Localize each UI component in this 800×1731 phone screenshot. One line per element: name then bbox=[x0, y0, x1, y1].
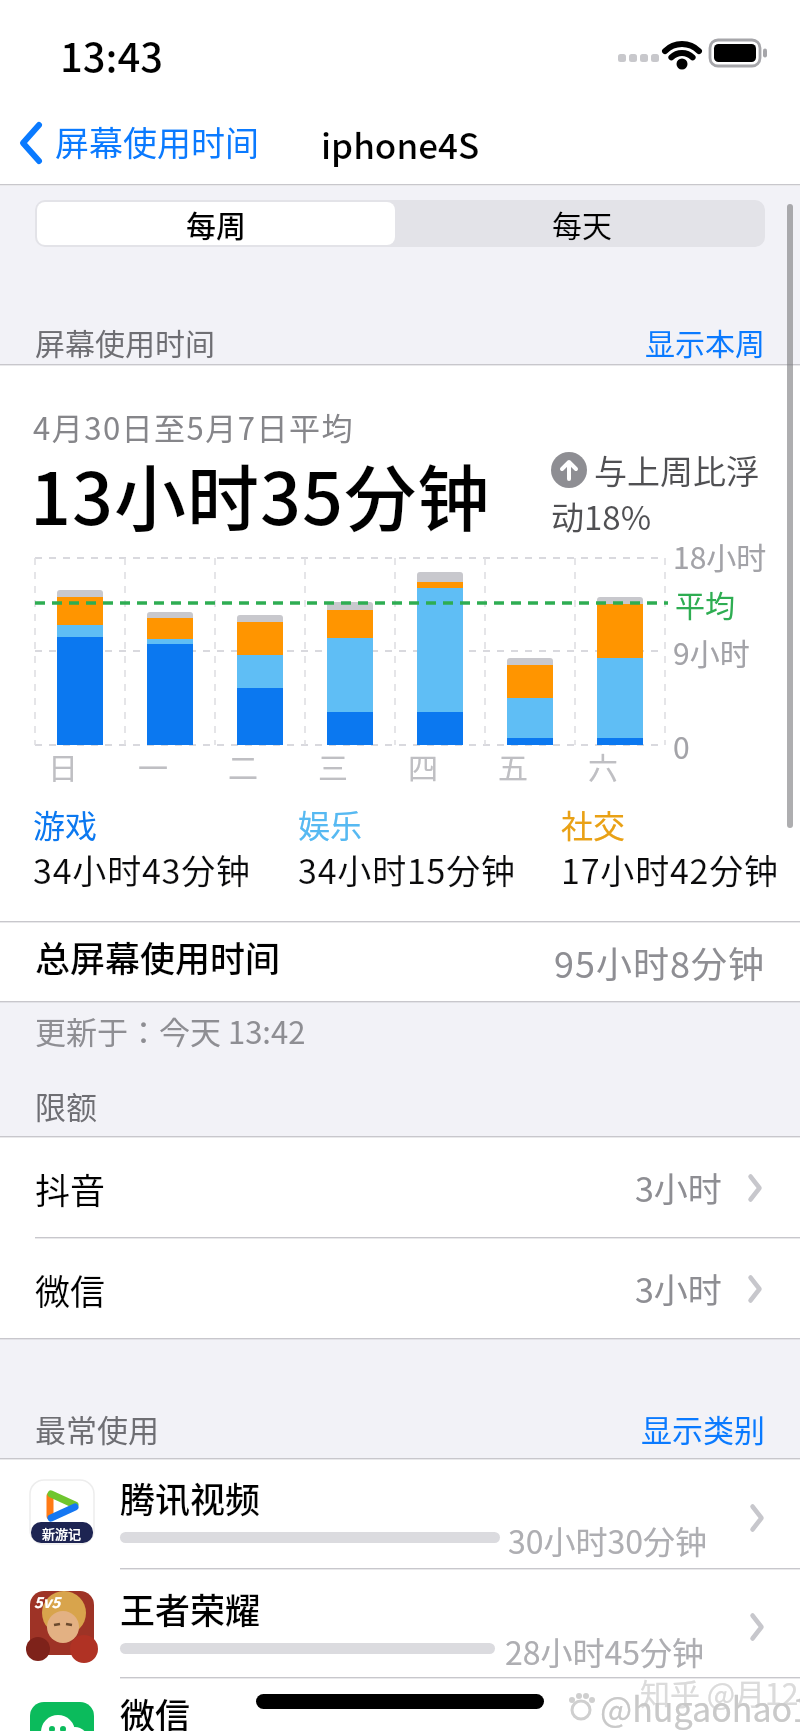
staticText: 三 bbox=[318, 744, 348, 787]
staticText: 日 bbox=[48, 744, 78, 787]
staticText: 30小时30分钟 bbox=[508, 1517, 708, 1563]
staticText: 17小时42分钟 bbox=[561, 845, 779, 894]
staticText: 屏幕使用时间 bbox=[35, 320, 215, 363]
staticText: 13:43 bbox=[60, 26, 164, 84]
button[interactable]: 腾讯视频 bbox=[0, 1459, 800, 1568]
staticText: 限额 bbox=[35, 1083, 97, 1128]
staticText: 一 bbox=[138, 744, 168, 787]
staticText: 六 bbox=[588, 744, 618, 787]
staticText: 微信 bbox=[35, 1264, 106, 1315]
staticText: 5v5 bbox=[34, 1591, 61, 1613]
staticText: 3小时 bbox=[635, 1163, 722, 1212]
staticText: 五 bbox=[498, 744, 528, 787]
staticText: 社交 bbox=[561, 801, 626, 847]
staticText: iphone4S bbox=[321, 118, 480, 169]
staticText: 4月30日至5月7日平均 bbox=[33, 404, 355, 449]
staticText: 二 bbox=[228, 744, 258, 787]
staticText: 每周 bbox=[186, 202, 246, 245]
staticText: 13小时35分钟 bbox=[30, 441, 491, 545]
staticText: 新游记 bbox=[42, 1524, 82, 1543]
staticText: 总屏幕使用时间 bbox=[35, 931, 281, 982]
staticText: 每天 bbox=[552, 202, 612, 245]
staticText: 18小时 bbox=[673, 534, 767, 577]
staticText: 9小时 bbox=[673, 630, 750, 673]
button[interactable]: 显示本周 bbox=[645, 320, 765, 363]
staticText: 抖音 bbox=[35, 1163, 106, 1214]
staticText: 34小时43分钟 bbox=[33, 845, 251, 894]
staticText: 四 bbox=[408, 744, 438, 787]
button[interactable]: 每周 bbox=[37, 202, 395, 245]
staticText: 更新于：今天 13:42 bbox=[35, 1008, 306, 1053]
button[interactable]: 每天 bbox=[400, 202, 763, 245]
staticText: 动18% bbox=[551, 492, 652, 540]
staticText: 28小时45分钟 bbox=[505, 1628, 705, 1674]
button[interactable]: 微信 bbox=[0, 1678, 800, 1731]
staticText: 娱乐 bbox=[298, 801, 363, 847]
staticText: 3小时 bbox=[635, 1264, 722, 1313]
button[interactable]: 显示类别 bbox=[641, 1406, 765, 1451]
staticText: 腾讯视频 bbox=[120, 1472, 261, 1523]
staticText: @hugaohao123 bbox=[600, 1683, 800, 1731]
staticText: 王者荣耀 bbox=[120, 1583, 261, 1634]
button[interactable]: 微信 bbox=[0, 1238, 800, 1338]
staticText: 屏幕使用时间 bbox=[55, 117, 259, 166]
staticText: 与上周比浮 bbox=[594, 446, 759, 494]
button[interactable]: 王者荣耀 bbox=[0, 1569, 800, 1677]
staticText: 0 bbox=[673, 724, 690, 767]
button[interactable]: 总屏幕使用时间 bbox=[0, 922, 800, 1002]
staticText: 游戏 bbox=[33, 801, 98, 847]
staticText: 平均 bbox=[675, 582, 735, 625]
staticText: 34小时15分钟 bbox=[298, 845, 516, 894]
staticText: 微信 bbox=[120, 1688, 191, 1731]
staticText: 最常使用 bbox=[35, 1406, 159, 1451]
button[interactable]: 抖音 bbox=[0, 1137, 800, 1237]
staticText: 95小时8分钟 bbox=[554, 936, 765, 988]
button[interactable]: 屏幕使用时间 bbox=[10, 112, 290, 174]
staticText: 知乎 @月123 bbox=[640, 1670, 800, 1713]
